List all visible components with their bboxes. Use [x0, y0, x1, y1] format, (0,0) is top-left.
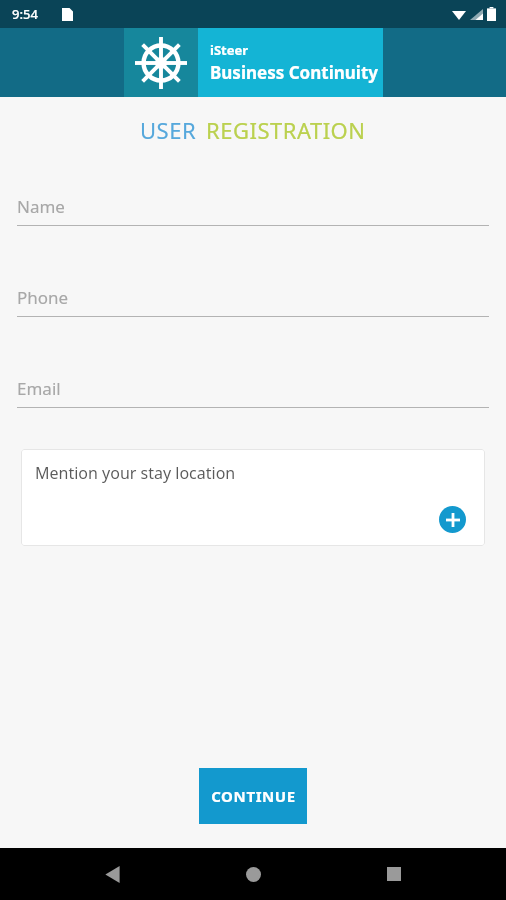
staticText: USER	[140, 115, 197, 145]
staticText: iSteer	[210, 41, 249, 59]
staticText: Business Continuity	[210, 61, 378, 84]
button[interactable]: Back	[88, 850, 136, 898]
button[interactable]: Name	[17, 195, 489, 226]
button[interactable]: iSteer Business Continuity	[124, 28, 383, 97]
button[interactable]: Phone	[17, 286, 489, 317]
staticText: Phone	[17, 286, 69, 309]
staticText: Mention your stay location	[35, 462, 236, 484]
button[interactable]: CONTINUE	[199, 768, 307, 824]
button[interactable]: Add location	[439, 506, 466, 533]
button[interactable]: Email	[17, 377, 489, 408]
staticText: CONTINUE	[211, 786, 296, 806]
button[interactable]: Home	[229, 850, 277, 898]
staticText: 9:54	[12, 5, 38, 23]
staticText: Name	[17, 195, 65, 218]
staticText: Email	[17, 377, 61, 400]
button[interactable]: Mention your stay location	[21, 449, 485, 546]
button[interactable]: Recent apps	[370, 850, 418, 898]
staticText: REGISTRATION	[206, 115, 366, 145]
